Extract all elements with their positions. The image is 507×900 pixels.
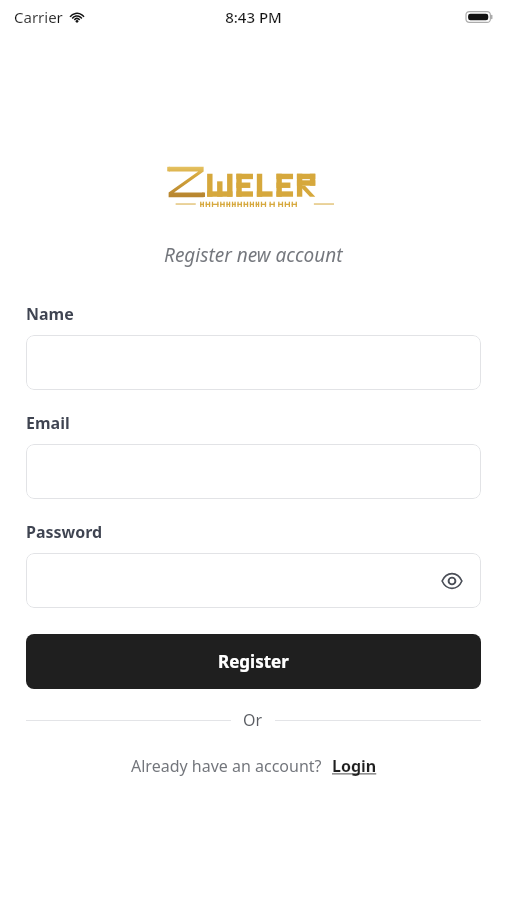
staticText: Password <box>26 521 103 543</box>
button[interactable]: Login <box>322 755 377 777</box>
button[interactable]: Register <box>26 634 481 689</box>
button[interactable]: Show password <box>26 553 481 608</box>
button[interactable] <box>26 444 481 499</box>
staticText: Login <box>332 755 377 777</box>
staticText: Register new account <box>164 242 343 268</box>
staticText: Email <box>26 412 70 434</box>
staticText: 8:43 PM <box>225 7 282 27</box>
staticText: Carrier <box>14 7 63 27</box>
staticText: Already have an account? <box>131 755 322 777</box>
button[interactable]: Show password <box>437 566 467 596</box>
staticText: Name <box>26 303 74 325</box>
staticText: Or <box>243 709 263 731</box>
staticText: Register <box>218 650 289 673</box>
button[interactable] <box>26 335 481 390</box>
